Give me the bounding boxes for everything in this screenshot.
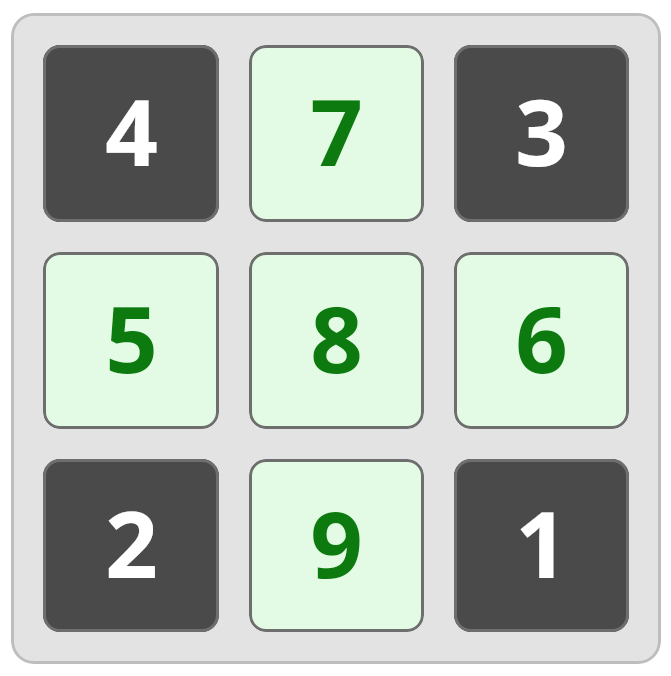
staticText: 2 (105, 480, 158, 605)
button[interactable]: Tile 2 (43, 459, 219, 632)
button[interactable]: Tile 6 (454, 252, 629, 429)
staticText: 3 (515, 68, 568, 193)
staticText: 7 (310, 68, 363, 193)
staticText: 6 (515, 275, 568, 400)
staticText: 1 (515, 480, 568, 605)
button[interactable]: Tile 5 (43, 252, 219, 429)
button[interactable]: Tile 3 (454, 45, 629, 222)
button[interactable]: Tile 4 (43, 45, 219, 222)
staticText: 9 (310, 480, 363, 605)
button[interactable]: Tile 7 (249, 45, 424, 222)
button[interactable]: Tile 8 (249, 252, 424, 429)
staticText: 5 (105, 275, 158, 400)
staticText: 4 (105, 68, 158, 193)
button[interactable]: Tile 1 (454, 459, 629, 632)
staticText: 8 (310, 275, 363, 400)
button[interactable]: Tile 9 (249, 459, 424, 632)
